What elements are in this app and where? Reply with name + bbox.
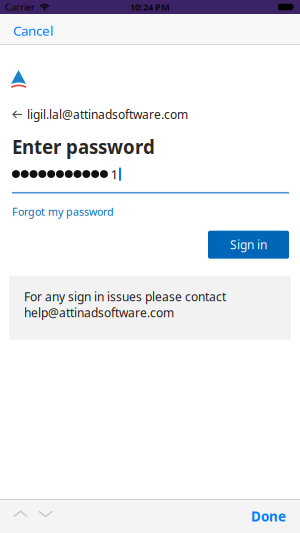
staticText: For any sign in issues please contact	[24, 289, 226, 305]
staticText: Cancel	[13, 22, 53, 39]
button[interactable]: Cancel	[13, 19, 53, 39]
staticText: Enter password	[12, 134, 155, 159]
staticText: Forgot my password	[12, 204, 114, 219]
button[interactable]: Next field	[38, 510, 53, 522]
staticText: Sign in	[230, 237, 267, 253]
staticText: Carrier	[5, 1, 35, 13]
staticText: ligil.lal@attinadsoftware.com	[27, 106, 188, 122]
staticText: 1	[110, 165, 118, 183]
button[interactable]: Sign in	[208, 231, 289, 259]
button[interactable]: ligil.lal@attinadsoftware.com	[12, 106, 188, 122]
button[interactable]: Forgot my password	[12, 204, 114, 219]
staticText: Done	[251, 507, 286, 525]
button[interactable]: Previous field	[13, 510, 28, 522]
staticText: 10:24 PM	[130, 1, 170, 13]
button[interactable]: Done	[251, 507, 286, 525]
staticText: help@attinadsoftware.com	[24, 305, 174, 320]
